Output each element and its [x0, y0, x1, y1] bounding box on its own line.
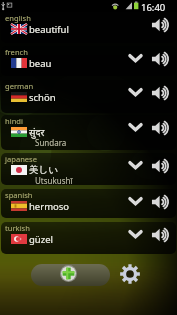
staticText: 美しい	[29, 164, 58, 176]
button[interactable]: Settings	[120, 264, 140, 284]
button[interactable]: Expand	[128, 160, 143, 171]
button[interactable]: Add	[60, 265, 77, 282]
button[interactable]: Speak	[151, 52, 175, 66]
button[interactable]: french	[1, 46, 176, 76]
staticText: Sundara	[35, 137, 67, 148]
button[interactable]: german	[1, 80, 176, 113]
button[interactable]: Expand	[128, 87, 143, 98]
staticText: beau	[29, 57, 52, 70]
button[interactable]: Expand	[128, 196, 143, 207]
button[interactable]: Expand	[128, 122, 143, 133]
button[interactable]: Expand	[128, 229, 143, 240]
staticText: 16:40	[141, 1, 166, 13]
staticText: beautiful	[29, 23, 69, 36]
button[interactable]: Speak	[151, 195, 175, 209]
button[interactable]: english	[1, 12, 176, 43]
staticText: Utsukushī	[35, 175, 73, 185]
staticText: schön	[29, 91, 56, 104]
staticText: güzel	[29, 233, 53, 246]
staticText: spanish	[5, 190, 33, 200]
staticText: french	[5, 47, 28, 57]
button[interactable]: spanish	[1, 189, 176, 218]
button[interactable]: Speak	[151, 121, 175, 135]
staticText: hindi	[5, 116, 23, 126]
button[interactable]: turkish	[1, 222, 176, 254]
button[interactable]: Speak	[151, 159, 175, 173]
button[interactable]: japanese	[1, 153, 176, 185]
staticText: hermoso	[29, 200, 70, 213]
button[interactable]: Expand	[128, 53, 143, 64]
button[interactable]: Speak	[151, 18, 175, 32]
button[interactable]: Add language	[31, 264, 110, 286]
button[interactable]: Speak	[151, 86, 175, 100]
staticText: japanese	[5, 154, 38, 164]
button[interactable]: hindi	[1, 115, 176, 150]
staticText: english	[5, 13, 31, 23]
staticText: turkish	[5, 223, 30, 233]
staticText: german	[5, 81, 34, 91]
staticText: सुंदर	[29, 126, 45, 139]
button[interactable]: Speak	[151, 228, 175, 242]
